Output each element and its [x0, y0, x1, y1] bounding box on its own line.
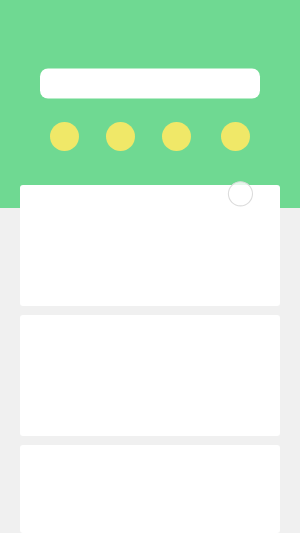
button[interactable]: Category 1 — [50, 122, 79, 151]
button[interactable]: Add — [224, 178, 256, 210]
button[interactable]: Category 2 — [106, 122, 135, 151]
button[interactable]: Search — [40, 68, 260, 99]
button[interactable]: Category 3 — [162, 122, 191, 151]
button[interactable]: Category 4 — [221, 122, 250, 151]
